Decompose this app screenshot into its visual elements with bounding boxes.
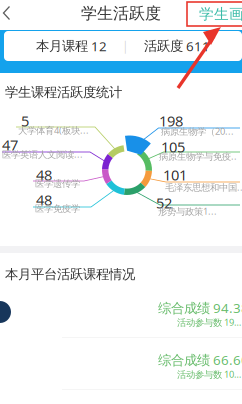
staticText: 医学英语人文阅读... bbox=[2, 148, 83, 160]
staticText: 48 bbox=[36, 165, 52, 184]
staticText: 学生课程活跃度统计 bbox=[5, 84, 122, 100]
staticText: 形势与政策1... bbox=[158, 205, 217, 217]
staticText: 活动参与数 19… bbox=[177, 316, 241, 328]
button[interactable]: 综合成绩 94.38 bbox=[0, 290, 242, 338]
staticText: 52 bbox=[156, 193, 172, 212]
staticText: 101 bbox=[163, 165, 187, 184]
staticText: 活动参与数 10… bbox=[177, 368, 241, 380]
staticText: 学生活跃度 bbox=[81, 4, 161, 23]
staticText: 105 bbox=[161, 137, 185, 156]
button[interactable]: 综合成绩 66.60 bbox=[0, 342, 242, 390]
staticText: 病原生物学与免疫.. bbox=[159, 150, 237, 162]
staticText: 综合成绩 66.60 bbox=[158, 351, 242, 369]
staticText: 47 bbox=[2, 135, 18, 154]
staticText: 病原生物学（20... bbox=[161, 125, 234, 137]
staticText: 学生画像 bbox=[199, 5, 242, 23]
staticText: 48 bbox=[36, 190, 52, 209]
staticText: 611 bbox=[183, 37, 210, 55]
staticText: 12 bbox=[88, 37, 107, 55]
staticText: 活跃度 bbox=[144, 38, 183, 54]
staticText: 198 bbox=[159, 111, 183, 130]
staticText: 大学体育4(板块... bbox=[18, 124, 89, 136]
staticText: 医学遗传学 bbox=[35, 178, 80, 189]
staticText: 医学免疫学 bbox=[35, 203, 80, 214]
button[interactable]: 学生画像 bbox=[199, 1, 242, 27]
staticText: 本月课程 bbox=[36, 38, 88, 54]
staticText: 毛泽东思想和中国... bbox=[165, 181, 242, 193]
staticText: 5 bbox=[21, 111, 29, 130]
staticText: 综合成绩 94.38 bbox=[158, 299, 242, 317]
button[interactable]: Back bbox=[0, 0, 26, 26]
staticText: | bbox=[122, 38, 129, 54]
staticText: 本月平台活跃课程情况 bbox=[5, 266, 135, 282]
